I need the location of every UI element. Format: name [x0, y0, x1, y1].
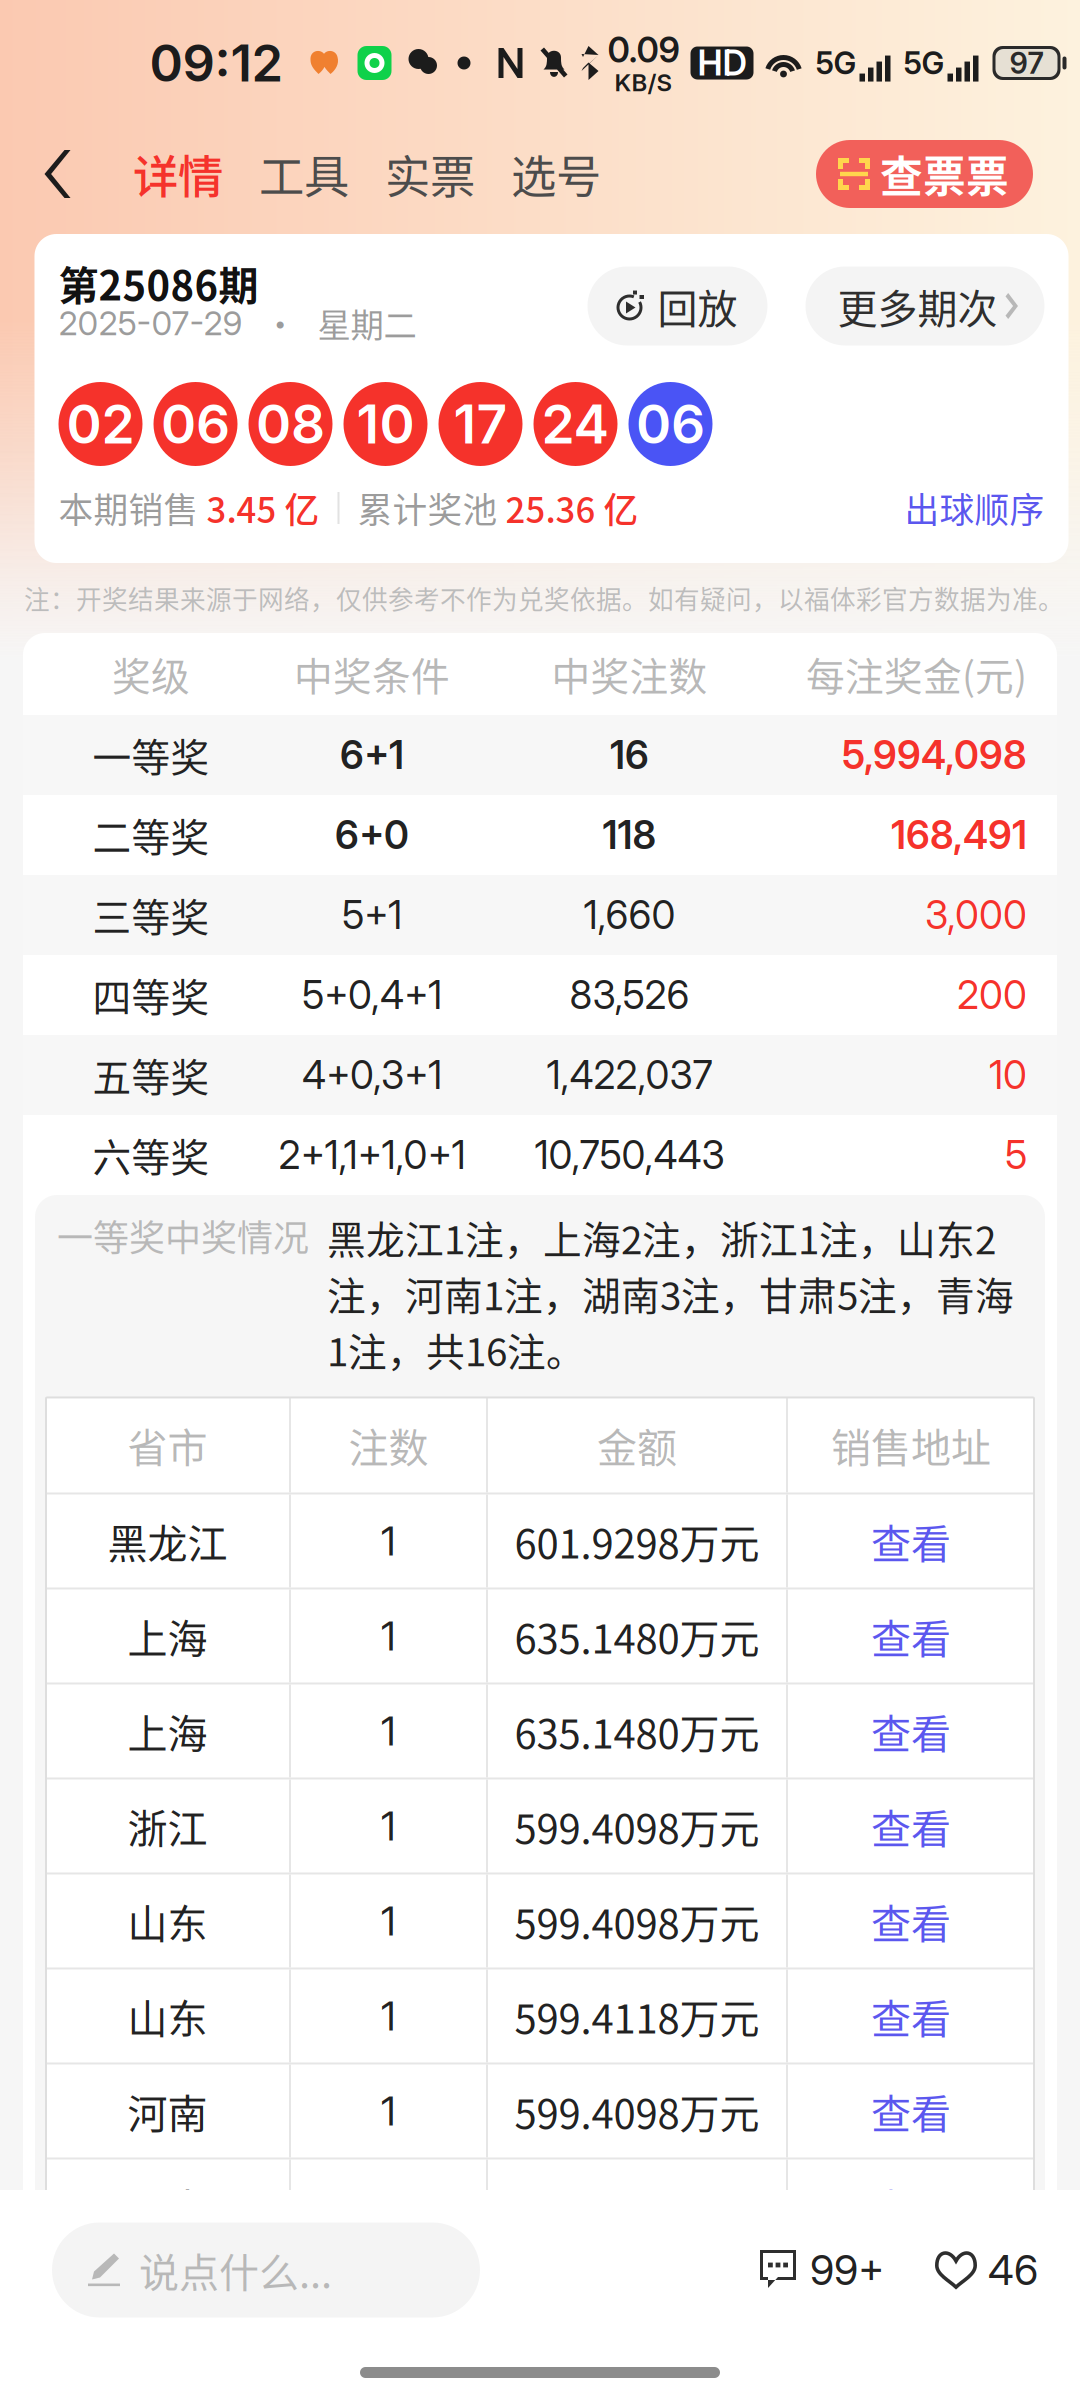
staticText: 1: [381, 2182, 396, 2230]
staticText: 25.36 亿: [505, 483, 638, 533]
staticText: 10: [989, 1052, 1027, 1098]
staticText: 1: [381, 2087, 396, 2135]
button[interactable]: 查看: [788, 1779, 1034, 1872]
staticText: 一等奖: [92, 727, 209, 783]
staticText: 四等奖: [92, 967, 209, 1023]
button[interactable]: 查看: [788, 2064, 1034, 2157]
staticText: 星期二: [317, 299, 416, 347]
staticText: 省市: [127, 1416, 207, 1474]
staticText: 08: [256, 392, 325, 456]
button[interactable]: 说点什么...: [52, 2222, 480, 2317]
staticText: 3.45 亿: [206, 483, 319, 533]
staticText: 5G: [903, 44, 944, 81]
staticText: 5+0,4+1: [302, 972, 442, 1018]
staticText: 635.1480万元: [514, 1607, 759, 1665]
staticText: 24: [541, 392, 609, 456]
staticText: 2025-07-29: [58, 303, 242, 343]
staticText: 599.4118万元: [514, 1987, 759, 2045]
staticText: 黑龙江: [107, 1512, 227, 1570]
staticText: 查看: [871, 1702, 951, 1760]
button[interactable]: 查票票: [816, 140, 1033, 208]
staticText: 06: [161, 392, 230, 456]
staticText: 06: [636, 392, 705, 456]
staticText: 三等奖: [92, 887, 209, 943]
staticText: 1: [381, 1802, 396, 1850]
button[interactable]: 回放: [587, 266, 767, 345]
staticText: 说点什么...: [139, 2241, 332, 2299]
staticText: 累计奖池: [357, 483, 505, 533]
staticText: 0.09: [607, 29, 679, 71]
staticText: 中奖注数: [551, 646, 707, 702]
staticText: 二等奖: [92, 807, 209, 863]
staticText: 599.4098万元: [514, 1892, 759, 1950]
staticText: 1,422,037: [546, 1052, 712, 1098]
staticText: 599.4098万元: [514, 1797, 759, 1855]
staticText: 出球顺序: [904, 483, 1044, 533]
button[interactable]: 查看: [788, 1969, 1034, 2062]
staticText: 更多期次: [837, 277, 997, 335]
button[interactable]: Back: [0, 128, 115, 220]
staticText: 2+1,1+1,0+1: [278, 1132, 465, 1178]
staticText: 599.4098万元: [514, 2082, 759, 2140]
button[interactable]: 查看: [788, 1589, 1034, 1682]
staticText: HD: [697, 42, 746, 84]
button[interactable]: 查看: [788, 2159, 1034, 2252]
staticText: 3,000: [925, 892, 1027, 938]
button[interactable]: 查看: [788, 1874, 1034, 1967]
staticText: 查看: [871, 2082, 951, 2140]
staticText: 奖级: [112, 646, 190, 702]
staticText: 6+0: [335, 812, 409, 858]
staticText: 118: [602, 812, 656, 858]
staticText: 中奖条件: [294, 646, 450, 702]
staticText: 83,526: [569, 972, 689, 1018]
staticText: 注：开奖结果来源于网络，仅供参考不作为兑奖依据。如有疑问，以福体彩官方数据为准。: [24, 579, 1064, 617]
staticText: 1: [381, 1517, 396, 1565]
button[interactable]: 99+: [760, 2245, 884, 2295]
staticText: 16: [610, 732, 649, 778]
staticText: 17: [453, 392, 507, 456]
button[interactable]: 出球顺序: [904, 483, 1044, 533]
staticText: 湖南: [127, 2177, 207, 2235]
button[interactable]: 查看: [788, 1494, 1034, 1587]
staticText: 10: [356, 392, 414, 456]
staticText: 每注奖金(元): [806, 646, 1027, 702]
staticText: 详情: [133, 141, 223, 207]
staticText: 4+0,3+1: [302, 1052, 442, 1098]
staticText: 46: [988, 2245, 1038, 2295]
staticText: 上海: [127, 1607, 207, 1665]
button[interactable]: 查看: [788, 1684, 1034, 1777]
button[interactable]: 实票: [367, 128, 493, 220]
staticText: KB/S: [614, 68, 672, 97]
staticText: 注数: [348, 1416, 428, 1474]
staticText: 黑龙江1注，上海2注，浙江1注，山东2注，河南1注，湖南3注，甘肃5注，青海1注…: [327, 1209, 1014, 1377]
staticText: 回放: [657, 277, 737, 335]
staticText: 1: [381, 1612, 396, 1660]
button[interactable]: 更多期次: [805, 266, 1044, 345]
staticText: 1,660: [583, 892, 675, 938]
staticText: 查看: [871, 1892, 951, 1950]
button[interactable]: 选号: [493, 128, 619, 220]
button[interactable]: 46: [936, 2245, 1038, 2295]
staticText: 6+1: [340, 732, 404, 778]
staticText: 601.9298万元: [514, 1512, 759, 1570]
staticText: 查看: [871, 1987, 951, 2045]
staticText: 山东: [127, 1987, 207, 2045]
staticText: 山东: [127, 1892, 207, 1950]
staticText: 查看: [871, 1512, 951, 1570]
staticText: 1: [381, 1897, 396, 1945]
staticText: 金额: [597, 1416, 677, 1474]
staticText: 查票票: [880, 143, 1009, 205]
staticText: 六等奖: [92, 1127, 209, 1183]
staticText: 168,491: [891, 812, 1027, 858]
staticText: 635.1480万元: [514, 1702, 759, 1760]
button[interactable]: 详情: [115, 128, 241, 220]
staticText: 查看: [871, 1797, 951, 1855]
staticText: 5G: [815, 44, 856, 81]
staticText: ·: [242, 299, 317, 347]
button[interactable]: 工具: [241, 128, 367, 220]
staticText: 200: [957, 972, 1027, 1018]
staticText: 工具: [259, 141, 349, 207]
staticText: 五等奖: [92, 1047, 209, 1103]
